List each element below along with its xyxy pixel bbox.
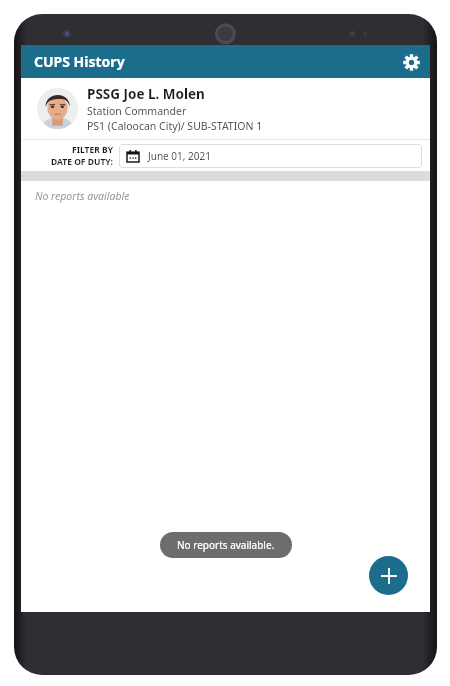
button[interactable]: PSSG Joe L. Molen: [21, 78, 430, 139]
staticText: PS1 (Caloocan City)/ SUB-STATION 1: [87, 119, 263, 133]
staticText: No reports available: [35, 189, 130, 203]
staticText: CUPS History: [34, 52, 125, 71]
staticText: PSSG Joe L. Molen: [87, 85, 205, 103]
staticText: DATE OF DUTY:: [50, 156, 113, 168]
staticText: No reports available.: [177, 538, 275, 552]
button[interactable]: Add report: [369, 556, 408, 595]
staticText: June 01, 2021: [148, 149, 211, 163]
button[interactable]: June 01, 2021: [119, 144, 422, 168]
staticText: FILTER BY: [72, 144, 113, 156]
staticText: Station Commander: [87, 104, 187, 118]
button[interactable]: Settings: [397, 48, 425, 76]
